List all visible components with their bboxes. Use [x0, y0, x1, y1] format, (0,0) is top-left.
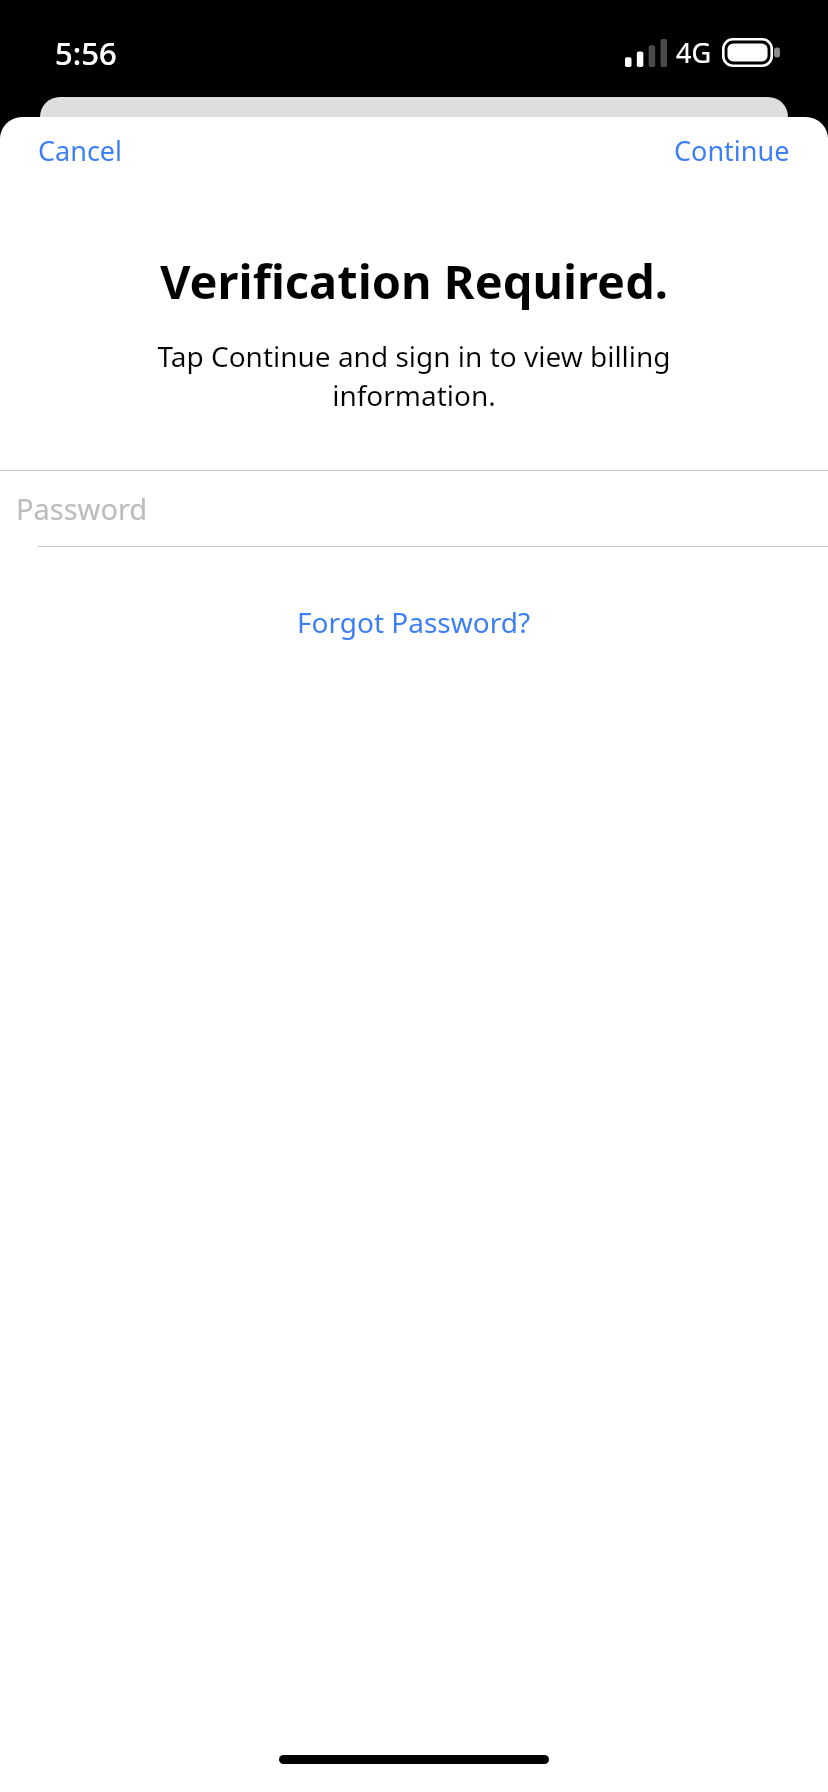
staticText: Continue [674, 132, 790, 169]
button[interactable]: Continue [658, 124, 806, 177]
staticText: Password [16, 489, 148, 528]
staticText: Forgot Password? [297, 603, 531, 641]
button[interactable]: Cancel [22, 124, 139, 177]
staticText: 4G [676, 34, 712, 71]
other: Battery [722, 38, 780, 67]
staticText: Verification Required. [24, 249, 804, 313]
staticText: Tap Continue and sign in to view billing… [100, 337, 728, 414]
staticText: Cancel [38, 132, 123, 169]
button[interactable]: Forgot Password? [277, 595, 551, 649]
button[interactable]: Password [0, 471, 828, 546]
other: Cellular signal [625, 39, 667, 67]
staticText: 5:56 [55, 32, 117, 74]
